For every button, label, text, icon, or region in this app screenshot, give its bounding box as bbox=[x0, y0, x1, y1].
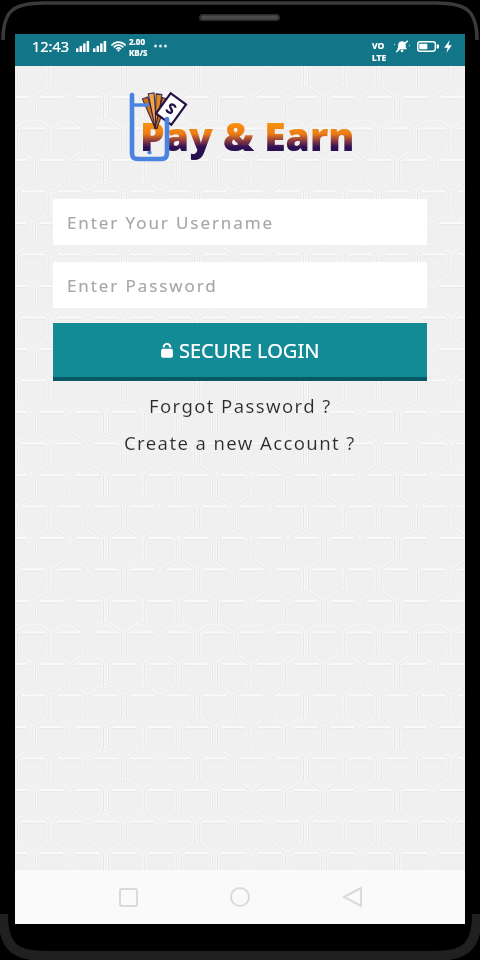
staticText: LTE bbox=[372, 52, 387, 64]
staticText: Forgot Password ? bbox=[149, 393, 332, 418]
staticText: Enter Password bbox=[67, 274, 218, 297]
button[interactable]: Back bbox=[324, 870, 380, 924]
staticText: SECURE LOGIN bbox=[179, 337, 320, 364]
button[interactable]: Forgot Password ? bbox=[139, 390, 342, 421]
staticText: Create a new Account ? bbox=[124, 430, 356, 455]
staticText: Pay & Earn bbox=[140, 109, 355, 162]
button[interactable]: Home bbox=[212, 870, 268, 924]
staticText: VO bbox=[372, 40, 385, 52]
button[interactable]: Enter Your Username bbox=[53, 199, 427, 245]
button[interactable]: Enter Password bbox=[53, 262, 427, 308]
staticText: 12:43 bbox=[32, 36, 70, 56]
staticText: Enter Your Username bbox=[67, 211, 274, 234]
button[interactable]: Create a new Account ? bbox=[114, 427, 366, 458]
button[interactable]: SECURE LOGIN bbox=[53, 323, 427, 381]
staticText: 2.00 bbox=[129, 36, 145, 47]
button[interactable]: Recents bbox=[100, 870, 156, 924]
staticText: KB/S bbox=[129, 47, 148, 58]
